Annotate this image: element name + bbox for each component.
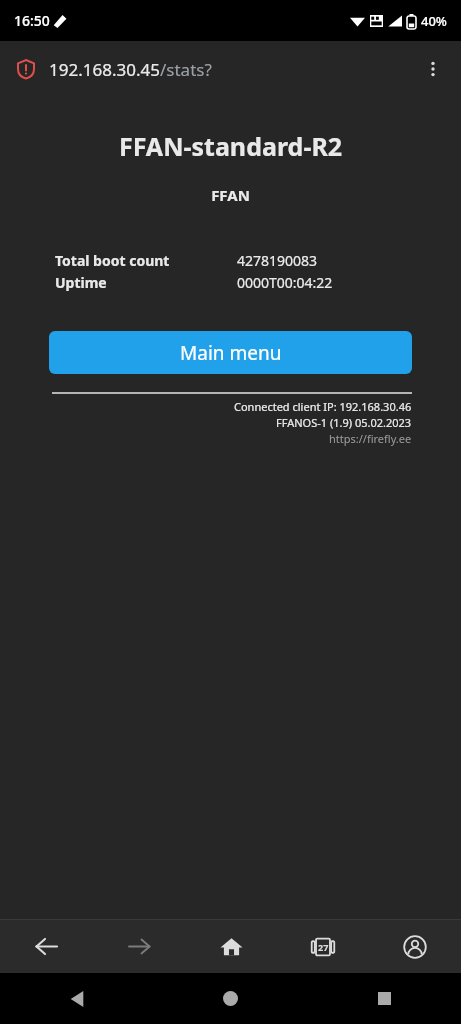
staticText: 40% (421, 12, 447, 30)
staticText: /stats? (160, 58, 212, 81)
staticText: 192.168.30.45 (49, 58, 160, 81)
button[interactable]: Account (369, 920, 461, 973)
staticText: Uptime (55, 273, 237, 292)
button[interactable]: More options (411, 47, 455, 91)
button[interactable]: https://firefly.ee (329, 431, 412, 446)
staticText: FFAN (0, 185, 461, 205)
staticText: 27 (318, 941, 329, 953)
staticText: Connected client IP: 192.168.30.46 (234, 399, 412, 414)
button[interactable]: Back (0, 973, 153, 1024)
button[interactable]: Home (185, 920, 277, 973)
button[interactable]: Main menu (49, 331, 412, 374)
button[interactable]: Back (0, 920, 93, 973)
button[interactable]: Forward (93, 920, 185, 973)
button[interactable]: Site information, connection not secure (0, 41, 461, 97)
other: Site information, connection not secure (16, 59, 36, 79)
button[interactable]: Home (153, 973, 307, 1024)
staticText: 16:50 (14, 11, 50, 30)
button[interactable]: Tabs, 27 open (277, 920, 369, 973)
staticText: Main menu (180, 340, 282, 366)
staticText: FFANOS-1 (1.9) 05.02.2023 (276, 415, 412, 430)
staticText: 0000T00:04:22 (237, 273, 333, 292)
button[interactable]: Recent apps (307, 973, 461, 1024)
staticText: Total boot count (55, 251, 237, 270)
staticText: 4278190083 (237, 251, 318, 270)
staticText: FFAN-standard-R2 (0, 129, 461, 163)
